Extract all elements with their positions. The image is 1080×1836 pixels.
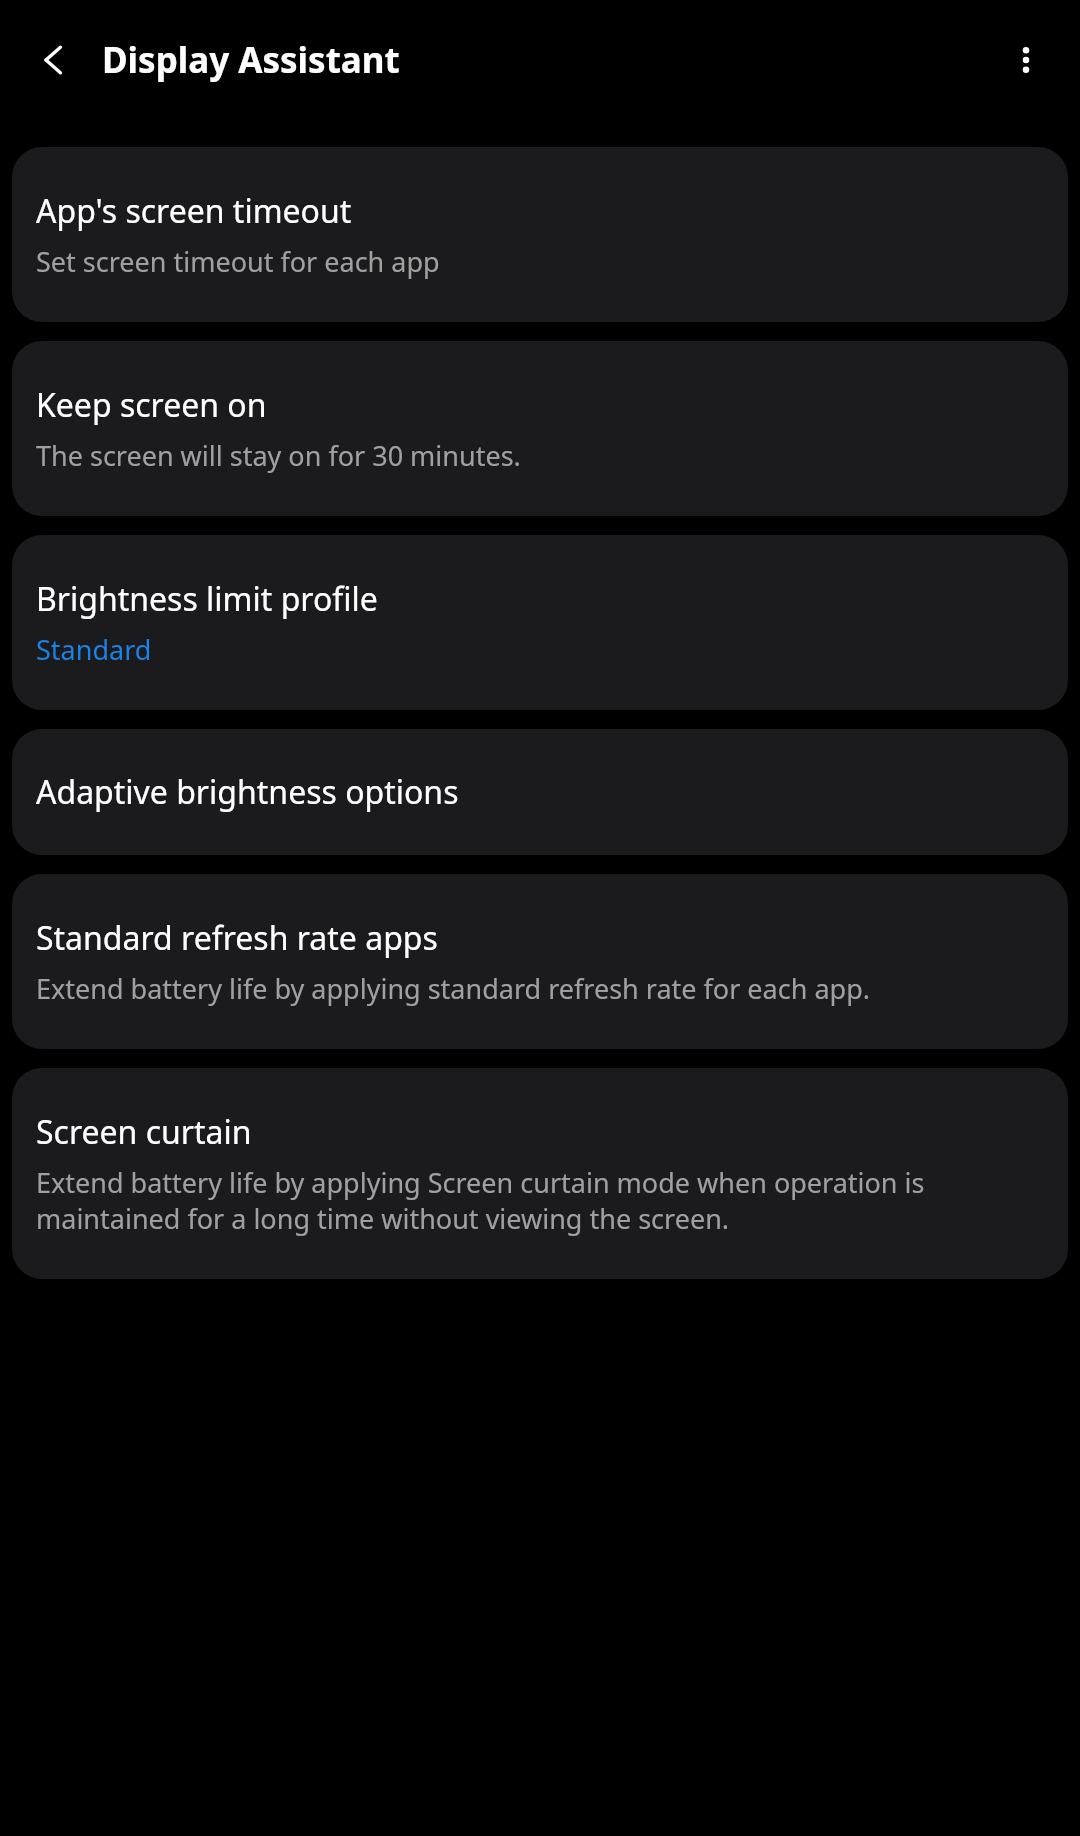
staticText: Screen curtain bbox=[36, 1110, 252, 1154]
staticText: Brightness limit profile bbox=[36, 577, 378, 621]
button[interactable]: Keep screen on bbox=[12, 341, 1068, 516]
staticText: The screen will stay on for 30 minutes. bbox=[36, 437, 521, 474]
button[interactable]: Standard refresh rate apps bbox=[12, 874, 1068, 1049]
staticText: Standard bbox=[36, 631, 152, 668]
staticText: Standard refresh rate apps bbox=[36, 916, 438, 960]
button[interactable]: Brightness limit profile bbox=[12, 535, 1068, 710]
staticText: Keep screen on bbox=[36, 383, 267, 427]
button[interactable]: More options bbox=[988, 22, 1064, 98]
staticText: App's screen timeout bbox=[36, 189, 352, 233]
staticText: Set screen timeout for each app bbox=[36, 243, 440, 280]
button[interactable]: Screen curtain bbox=[12, 1068, 1068, 1279]
button[interactable]: Adaptive brightness options bbox=[12, 729, 1068, 855]
button[interactable]: Navigate up bbox=[16, 22, 92, 98]
button[interactable]: App's screen timeout bbox=[12, 147, 1068, 322]
staticText: Extend battery life by applying Screen c… bbox=[36, 1164, 1044, 1237]
staticText: Display Assistant bbox=[102, 36, 988, 84]
staticText: Extend battery life by applying standard… bbox=[36, 970, 870, 1007]
staticText: Adaptive brightness options bbox=[36, 770, 459, 814]
